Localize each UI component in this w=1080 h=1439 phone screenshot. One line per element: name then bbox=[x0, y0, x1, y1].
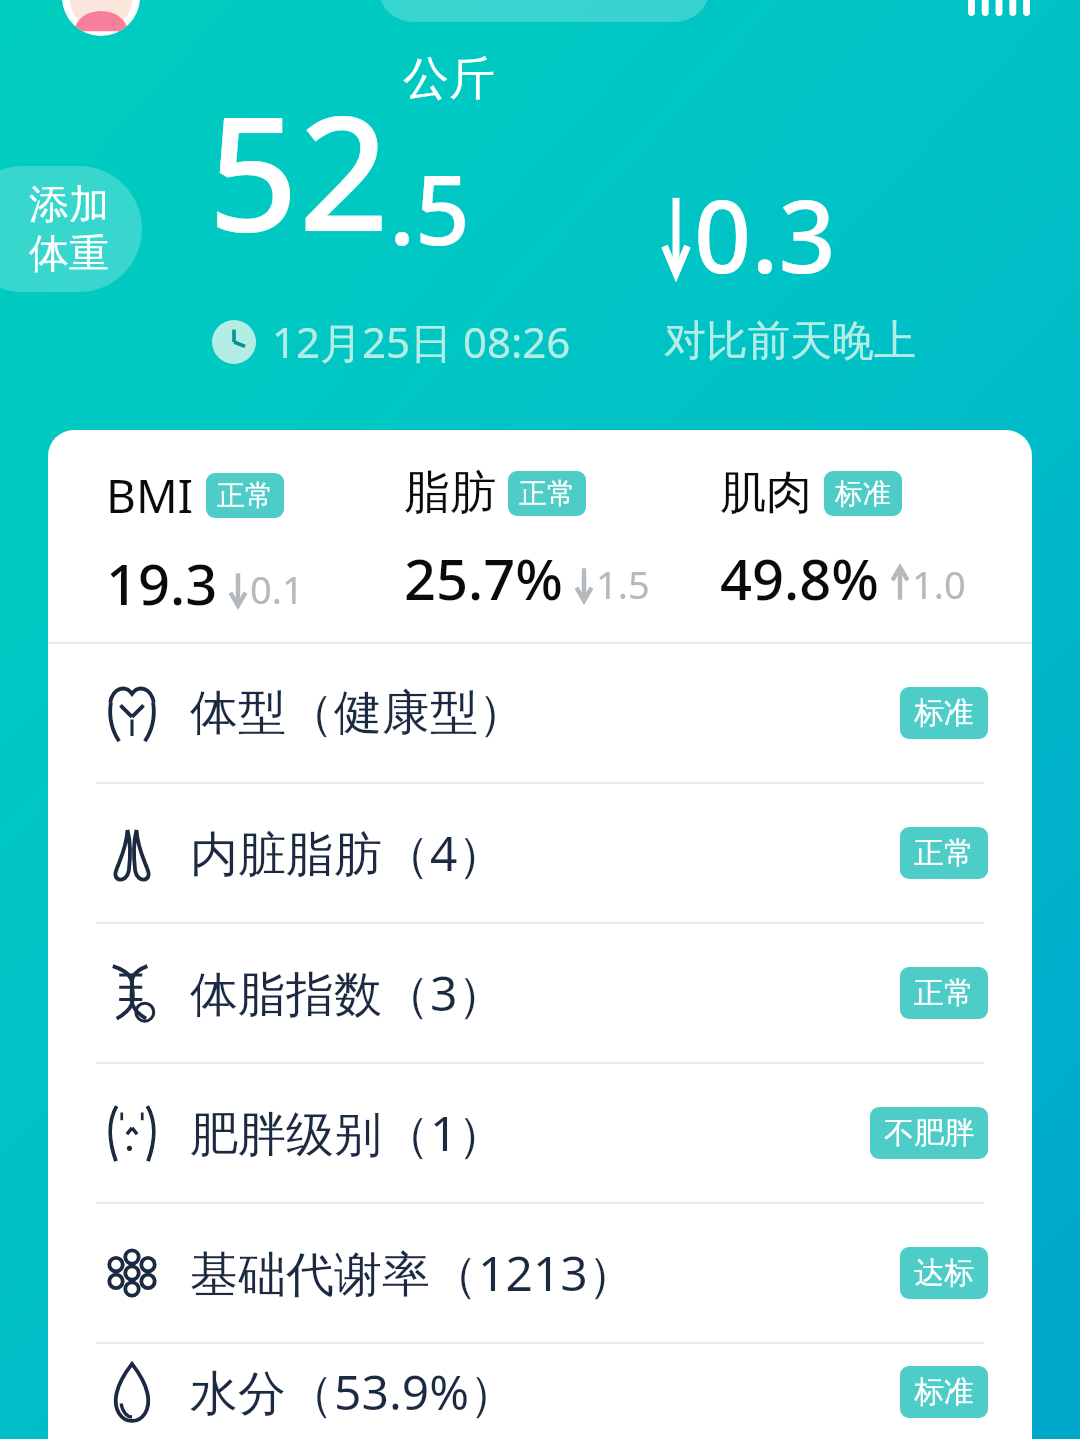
button[interactable]: 基础代谢率（1213） bbox=[48, 1204, 1032, 1342]
staticText: 内脏脂肪（4） bbox=[190, 820, 506, 886]
staticText: 正常 bbox=[914, 974, 974, 1012]
staticText: 25.7% bbox=[404, 540, 564, 616]
staticText: 1.0 bbox=[912, 558, 966, 610]
button[interactable]: 体型（健康型） bbox=[48, 644, 1032, 782]
button[interactable]: 肌肉 bbox=[720, 464, 1012, 616]
staticText: 52 bbox=[208, 62, 389, 277]
staticText: 肌肉 bbox=[720, 464, 812, 522]
staticText: 脂肪 bbox=[404, 464, 496, 522]
button[interactable]: 体脂指数（3） bbox=[48, 924, 1032, 1062]
staticText: 肥胖级别（1） bbox=[190, 1100, 506, 1166]
staticText: 0.3 bbox=[694, 166, 836, 302]
staticText: 不肥胖 bbox=[884, 1114, 974, 1152]
staticText: 0.1 bbox=[250, 563, 304, 615]
staticText: .5 bbox=[389, 142, 471, 273]
staticText: 标准 bbox=[835, 476, 891, 511]
staticText: 19.3 bbox=[106, 545, 218, 621]
staticText: 正常 bbox=[519, 476, 575, 511]
staticText: 体脂指数（3） bbox=[190, 960, 506, 1026]
staticText: 1.5 bbox=[596, 558, 650, 610]
staticText: 基础代谢率（1213） bbox=[190, 1240, 636, 1306]
button[interactable]: 水分（53.9%） bbox=[48, 1344, 1032, 1439]
button[interactable]: Mode selector bbox=[378, 0, 710, 22]
staticText: 公斤 bbox=[403, 50, 495, 108]
button[interactable]: 肥胖级别（1） bbox=[48, 1064, 1032, 1202]
staticText: 体型（健康型） bbox=[190, 683, 526, 743]
staticText: 49.8% bbox=[720, 540, 880, 616]
button[interactable]: BMI bbox=[106, 464, 404, 621]
button[interactable]: Signal bbox=[968, 0, 1030, 20]
staticText: 12月25日 08:26 bbox=[272, 313, 571, 370]
staticText: 正常 bbox=[914, 834, 974, 872]
staticText: 对比前天晚上 bbox=[664, 315, 916, 368]
button[interactable]: 脂肪 bbox=[404, 464, 720, 616]
button[interactable]: Profile bbox=[62, 0, 140, 36]
staticText: 标准 bbox=[914, 1373, 974, 1411]
staticText: 添加 体重 bbox=[29, 179, 109, 279]
staticText: 水分（53.9%） bbox=[190, 1359, 518, 1425]
staticText: 正常 bbox=[217, 478, 273, 513]
button[interactable]: 添加 体重 bbox=[0, 166, 142, 292]
staticText: 标准 bbox=[914, 694, 974, 732]
button[interactable]: 内脏脂肪（4） bbox=[48, 784, 1032, 922]
staticText: 达标 bbox=[914, 1254, 974, 1292]
staticText: BMI bbox=[106, 464, 194, 527]
